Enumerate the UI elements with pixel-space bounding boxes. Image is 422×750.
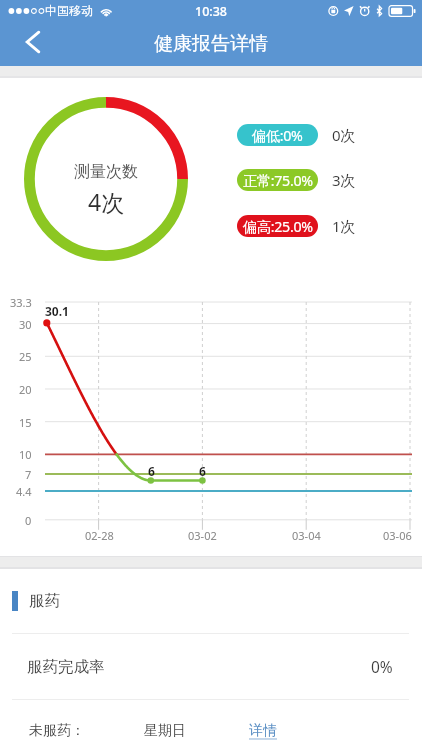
staticText: 33.3 <box>10 295 32 310</box>
staticText: 10 <box>19 447 32 462</box>
staticText: 30.1 <box>45 303 69 319</box>
staticText: 4次 <box>88 186 125 217</box>
staticText: 偏低:0% <box>252 126 303 145</box>
staticText: 详情 <box>249 722 277 740</box>
staticText: 1次 <box>332 216 356 236</box>
staticText: 25 <box>19 349 32 364</box>
staticText: 测量次数 <box>74 162 138 182</box>
staticText: 10:38 <box>195 3 228 20</box>
staticText: 星期日 <box>144 722 186 740</box>
staticText: 7 <box>25 467 32 482</box>
staticText: 6 <box>199 463 206 479</box>
staticText: 健康报告详情 <box>154 32 268 56</box>
staticText: 0 <box>25 513 32 528</box>
staticText: 15 <box>19 415 32 430</box>
button[interactable]: 服药完成率 <box>0 634 422 699</box>
staticText: 03-06 <box>383 528 412 543</box>
staticText: 20 <box>19 382 32 397</box>
staticText: 中国移动 <box>45 3 93 18</box>
staticText: 未服药： <box>29 722 85 740</box>
staticText: 4.4 <box>16 484 32 499</box>
staticText: 服药完成率 <box>27 657 105 677</box>
staticText: 3次 <box>332 170 356 190</box>
staticText: 03-02 <box>188 528 217 543</box>
button[interactable]: 详情 <box>249 722 277 740</box>
staticText: 6 <box>148 463 155 479</box>
staticText: 偏高:25.0% <box>243 217 313 236</box>
staticText: 服药 <box>29 591 60 611</box>
staticText: 30 <box>19 317 32 332</box>
staticText: 0% <box>371 656 393 677</box>
staticText: 正常:75.0% <box>243 171 313 190</box>
staticText: 02-28 <box>85 528 114 543</box>
staticText: 03-04 <box>292 528 321 543</box>
button[interactable]: Back <box>8 22 56 66</box>
staticText: 0次 <box>332 125 356 145</box>
